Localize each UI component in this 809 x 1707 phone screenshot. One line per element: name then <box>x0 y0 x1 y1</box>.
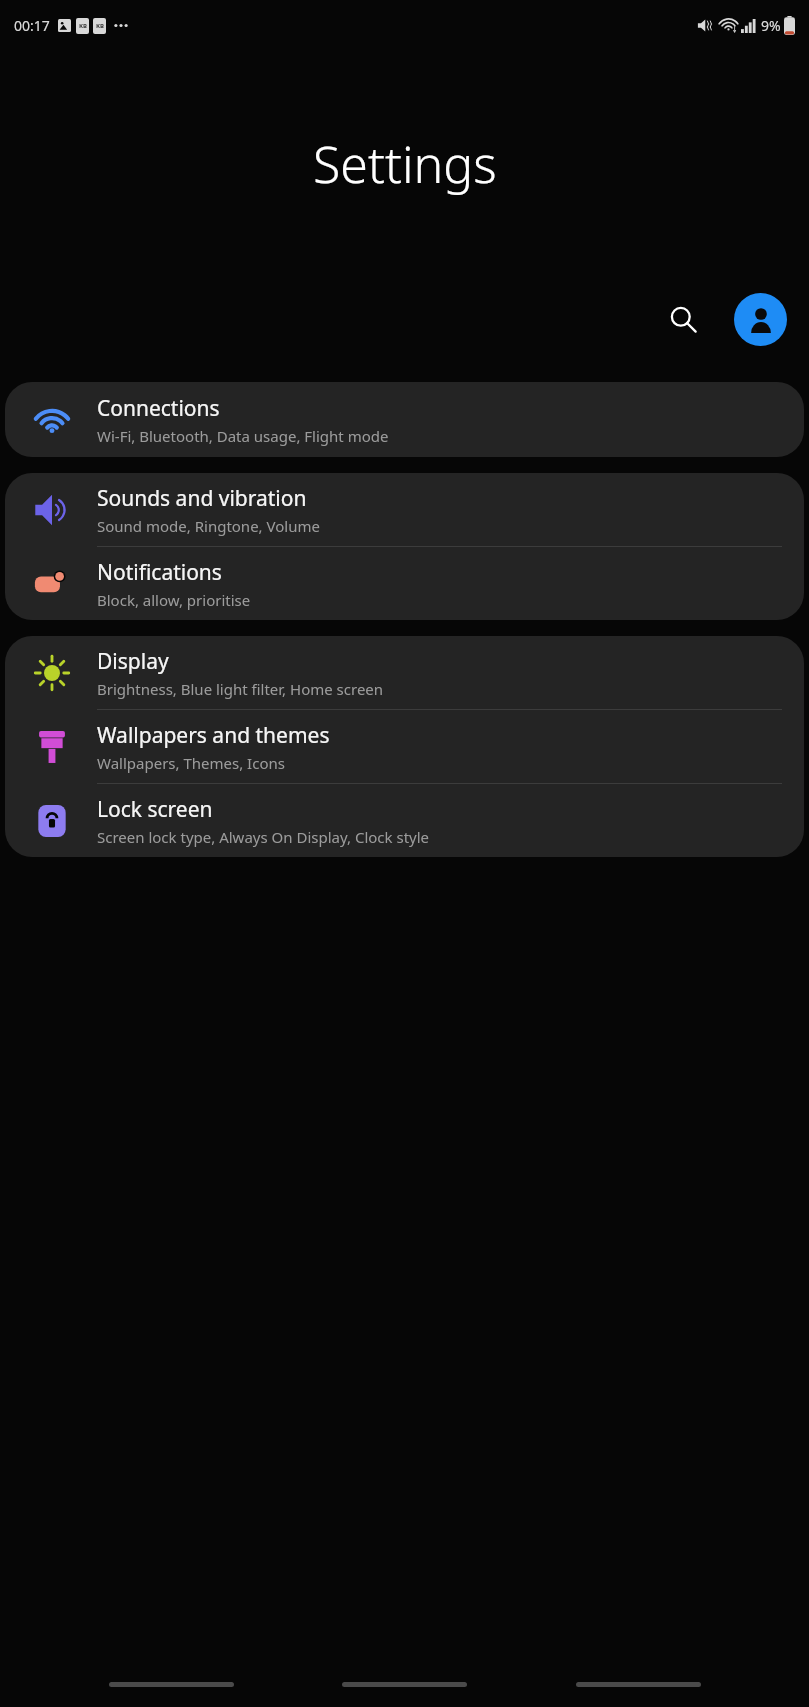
staticText: Sound mode, Ringtone, Volume <box>97 516 320 536</box>
button[interactable]: Navigation <box>342 1682 467 1687</box>
staticText: Sounds and vibration <box>97 484 307 513</box>
staticText: KB <box>96 22 104 30</box>
button[interactable]: Search settings <box>654 290 712 348</box>
staticText: Connections <box>97 394 220 423</box>
button[interactable]: Samsung account <box>734 293 787 346</box>
staticText: Display <box>97 647 169 676</box>
staticText: Brightness, Blue light filter, Home scre… <box>97 679 384 699</box>
staticText: 00:17 <box>14 16 50 35</box>
staticText: Wallpapers and themes <box>97 721 330 750</box>
button[interactable]: Sounds and vibration <box>5 473 804 546</box>
button[interactable]: Navigation <box>109 1682 234 1687</box>
staticText: Notifications <box>97 558 222 587</box>
staticText: Lock screen <box>97 795 213 824</box>
button[interactable]: Wallpapers and themes <box>5 710 804 783</box>
staticText: Wi-Fi, Bluetooth, Data usage, Flight mod… <box>97 426 389 446</box>
button[interactable]: Lock screen <box>5 784 804 857</box>
staticText: Block, allow, prioritise <box>97 590 251 610</box>
button[interactable]: Navigation <box>576 1682 701 1687</box>
button[interactable]: Notifications <box>5 547 804 620</box>
staticText: KB <box>79 22 87 30</box>
staticText: Wallpapers, Themes, Icons <box>97 753 285 773</box>
staticText: Screen lock type, Always On Display, Clo… <box>97 827 430 847</box>
button[interactable]: Connections <box>5 382 804 457</box>
staticText: 9% <box>761 16 781 35</box>
staticText: Settings <box>313 130 497 198</box>
button[interactable]: Display <box>5 636 804 709</box>
